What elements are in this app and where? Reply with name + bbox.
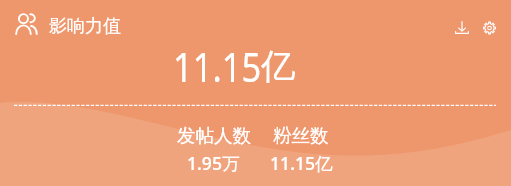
staticText: 影响力值 bbox=[49, 15, 121, 38]
staticText: 11.15亿 bbox=[270, 151, 333, 175]
staticText: 粉丝数 bbox=[273, 124, 329, 147]
button[interactable]: Settings bbox=[483, 21, 496, 35]
staticText: 1.95万 bbox=[187, 151, 240, 175]
staticText: 亿 bbox=[261, 45, 296, 88]
staticText: 发帖人数 bbox=[177, 124, 251, 147]
staticText: 11.15 bbox=[173, 39, 262, 93]
button[interactable]: Download bbox=[455, 21, 469, 34]
